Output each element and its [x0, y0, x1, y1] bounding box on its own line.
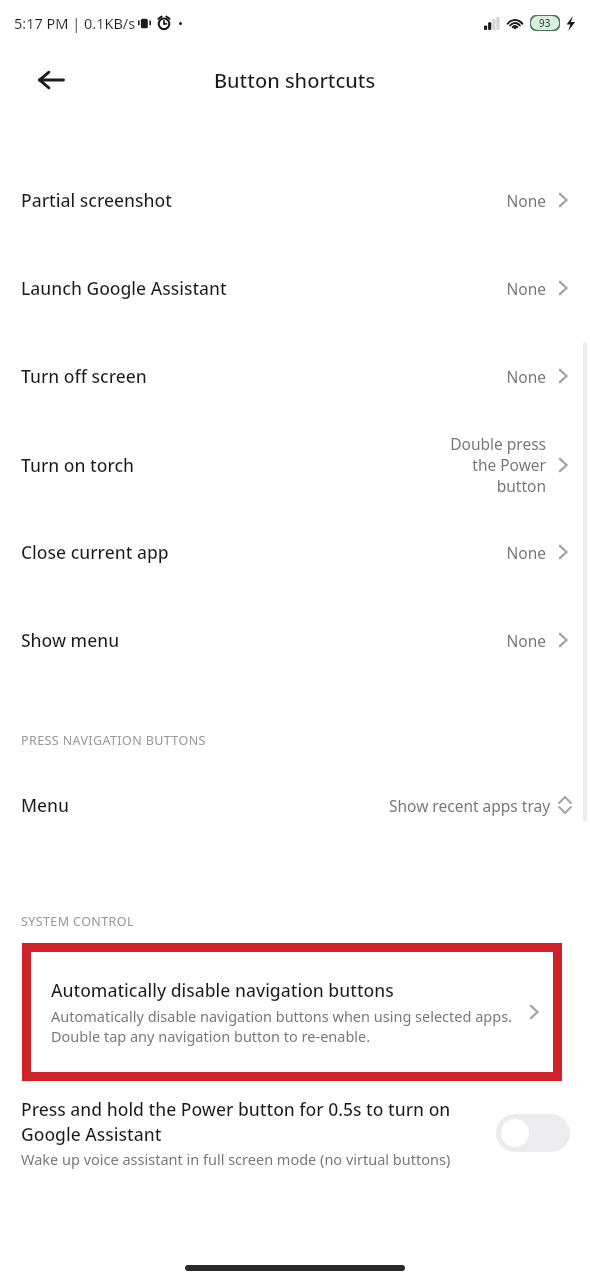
staticText: Wake up voice assistant in full screen m…: [21, 1149, 451, 1169]
staticText: Launch Google Assistant: [21, 276, 506, 300]
staticText: Turn off screen: [21, 364, 506, 388]
staticText: Close current app: [21, 540, 506, 564]
staticText: Show recent apps tray: [389, 795, 551, 816]
staticText: Button shortcuts: [214, 67, 376, 94]
staticText: Partial screenshot: [21, 188, 506, 212]
button[interactable]: Turn off screen: [0, 332, 590, 420]
staticText: None: [506, 366, 546, 387]
staticText: Menu: [21, 793, 389, 817]
staticText: Turn on torch: [21, 453, 446, 477]
staticText: None: [506, 190, 546, 211]
staticText: None: [506, 630, 546, 651]
button[interactable]: Show menu: [0, 596, 590, 684]
staticText: None: [506, 278, 546, 299]
button[interactable]: Menu: [0, 777, 590, 833]
staticText: Show menu: [21, 628, 506, 652]
button[interactable]: Automatically disable navigation buttons: [31, 952, 553, 1072]
staticText: Double press the Power button: [446, 433, 546, 496]
button[interactable]: Close current app: [0, 508, 590, 596]
button[interactable]: Partial screenshot: [0, 156, 590, 244]
staticText: Automatically disable navigation buttons: [51, 978, 394, 1002]
staticText: SYSTEM CONTROL: [21, 913, 134, 930]
button[interactable]: Launch Google Assistant: [0, 244, 590, 332]
button[interactable]: Back: [30, 59, 72, 101]
staticText: Automatically disable navigation buttons…: [51, 1006, 519, 1046]
staticText: 93: [539, 16, 551, 30]
button[interactable]: Toggle Google Assistant power button: [496, 1114, 570, 1152]
staticText: 5:17 PM | 0.1KB/s: [14, 13, 136, 33]
staticText: None: [506, 542, 546, 563]
button[interactable]: Press and hold the Power button for 0.5s…: [0, 1097, 590, 1169]
staticText: PRESS NAVIGATION BUTTONS: [21, 732, 206, 749]
button[interactable]: Turn on torch: [0, 420, 590, 508]
staticText: Press and hold the Power button for 0.5s…: [21, 1097, 484, 1146]
